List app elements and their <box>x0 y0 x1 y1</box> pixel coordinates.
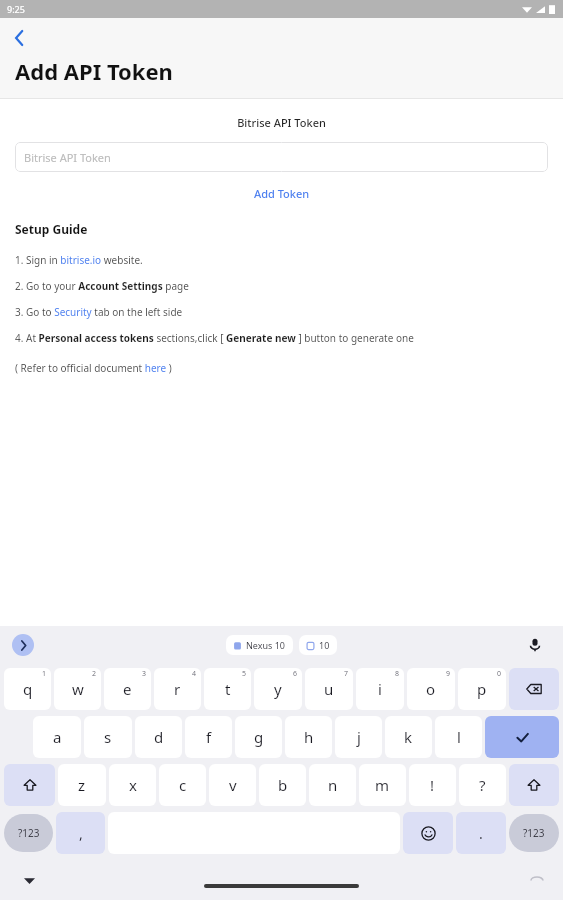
button[interactable]: p <box>458 668 506 710</box>
staticText: c <box>179 775 187 795</box>
staticText: 3 <box>142 669 147 679</box>
button[interactable]: n <box>309 764 356 806</box>
button[interactable]: y <box>254 668 302 710</box>
button[interactable]: Expand toolbar <box>12 634 34 656</box>
staticText: s <box>104 727 112 747</box>
button[interactable]: g <box>235 716 282 758</box>
button[interactable]: d <box>135 716 182 758</box>
staticText: Add API Token <box>15 56 173 86</box>
staticText: Add Token <box>254 186 310 201</box>
staticText: a <box>53 727 62 747</box>
staticText: f <box>206 727 212 747</box>
button[interactable]: l <box>435 716 482 758</box>
button[interactable]: ?123 <box>4 814 53 852</box>
button[interactable]: h <box>285 716 332 758</box>
staticText: j <box>357 727 361 747</box>
staticText: ? <box>479 775 486 795</box>
staticText: Bitrise API Token <box>0 115 563 130</box>
staticText: 3. Go to Security tab on the left side <box>15 305 183 319</box>
button[interactable]: ? <box>459 764 506 806</box>
staticText: 2 <box>92 669 97 679</box>
button[interactable]: v <box>209 764 256 806</box>
staticText: 4 <box>192 669 197 679</box>
button[interactable]: Shift <box>509 764 559 806</box>
staticText: 10 <box>319 639 330 651</box>
button[interactable]: z <box>58 764 106 806</box>
button[interactable]: e <box>104 668 151 710</box>
button[interactable]: Add Token <box>244 182 320 205</box>
staticText: , <box>79 824 83 843</box>
staticText: u <box>324 679 334 699</box>
staticText: t <box>225 679 231 699</box>
button[interactable]: 10 <box>299 635 337 655</box>
staticText: 4. At Personal access tokens sections,cl… <box>15 331 414 345</box>
staticText: . <box>479 824 483 843</box>
staticText: 0 <box>497 669 502 679</box>
staticText: r <box>174 679 181 699</box>
staticText: ?123 <box>523 826 545 840</box>
button[interactable]: f <box>185 716 232 758</box>
button[interactable]: i <box>356 668 404 710</box>
button[interactable]: k <box>385 716 432 758</box>
staticText: 8 <box>395 669 400 679</box>
staticText: q <box>23 679 33 699</box>
staticText: 1 <box>42 669 47 679</box>
staticText: m <box>375 775 390 795</box>
staticText: ! <box>430 775 435 795</box>
staticText: 5 <box>242 669 247 679</box>
staticText: 9 <box>446 669 451 679</box>
staticText: 6 <box>293 669 298 679</box>
staticText: v <box>229 775 237 795</box>
staticText: d <box>154 727 164 747</box>
staticText: n <box>328 775 338 795</box>
staticText: o <box>426 679 436 699</box>
staticText: i <box>378 679 382 699</box>
button[interactable]: o <box>407 668 455 710</box>
button[interactable]: ?123 <box>509 814 559 852</box>
button[interactable]: Keyboard switcher <box>527 870 547 890</box>
staticText: g <box>254 727 264 747</box>
staticText: 7 <box>344 669 349 679</box>
staticText: Bitrise API Token <box>24 150 111 165</box>
button[interactable]: Hide keyboard <box>18 869 40 891</box>
button[interactable]: c <box>159 764 206 806</box>
button[interactable]: a <box>33 716 81 758</box>
button[interactable]: x <box>109 764 156 806</box>
staticText: ( Refer to official document here ) <box>15 361 172 375</box>
button[interactable]: r <box>154 668 201 710</box>
button[interactable]: t <box>204 668 251 710</box>
button[interactable]: Back <box>4 22 36 54</box>
button[interactable]: Shift <box>4 764 55 806</box>
staticText: Setup Guide <box>15 221 88 237</box>
staticText: b <box>278 775 288 795</box>
button[interactable]: Emoji <box>403 812 453 854</box>
staticText: p <box>477 679 487 699</box>
button[interactable]: s <box>84 716 132 758</box>
button[interactable]: m <box>359 764 406 806</box>
button[interactable]: . <box>456 812 506 854</box>
staticText: z <box>78 775 86 795</box>
button[interactable]: j <box>335 716 382 758</box>
staticText: k <box>404 727 413 747</box>
button[interactable]: ! <box>409 764 456 806</box>
staticText: 9:25 <box>7 3 25 15</box>
button[interactable]: Backspace <box>509 668 559 710</box>
staticText: w <box>72 679 84 699</box>
button[interactable]: q <box>4 668 51 710</box>
button[interactable]: Bitrise API Token <box>15 142 548 172</box>
button[interactable]: b <box>259 764 306 806</box>
button[interactable]: , <box>56 812 105 854</box>
staticText: h <box>304 727 314 747</box>
button[interactable]: Nexus 10 <box>226 635 293 655</box>
staticText: ?123 <box>18 826 40 840</box>
button[interactable]: Voice input <box>523 633 547 657</box>
button[interactable]: w <box>54 668 101 710</box>
staticText: 2. Go to your Account Settings page <box>15 279 189 293</box>
staticText: 1. Sign in bitrise.io website. <box>15 253 143 267</box>
staticText: y <box>274 679 282 699</box>
staticText: x <box>129 775 137 795</box>
button[interactable]: u <box>305 668 353 710</box>
staticText: l <box>457 727 461 747</box>
button[interactable]: Enter <box>485 716 559 758</box>
